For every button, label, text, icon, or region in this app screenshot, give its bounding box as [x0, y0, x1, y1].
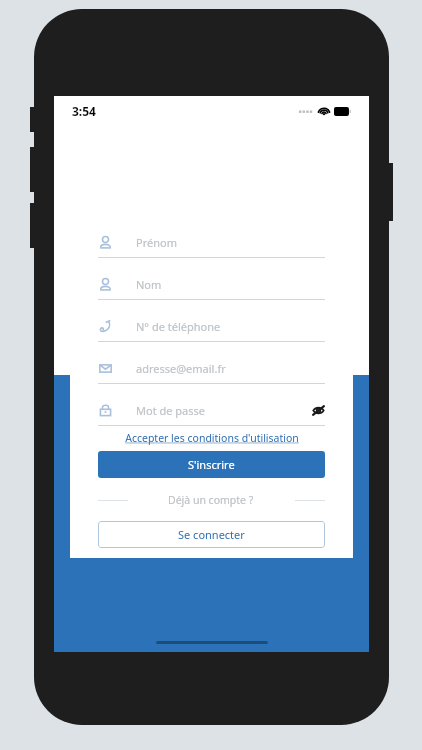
- staticText: 3:54: [72, 103, 96, 119]
- staticText: S'inscrire: [188, 457, 235, 472]
- staticText: Mot de passe: [136, 403, 205, 418]
- button[interactable]: adresse@email.fr: [98, 353, 325, 384]
- staticText: N° de téléphone: [136, 319, 221, 334]
- staticText: adresse@email.fr: [136, 361, 226, 376]
- staticText: Se connecter: [178, 527, 245, 542]
- button[interactable]: Mot de passe: [98, 395, 325, 426]
- staticText: Accepter les conditions d'utilisation: [125, 431, 299, 445]
- staticText: Nom: [136, 277, 162, 292]
- button[interactable]: Prénom: [98, 227, 325, 258]
- staticText: Déjà un compte ?: [168, 493, 254, 507]
- button[interactable]: Accepter les conditions d'utilisation: [98, 431, 325, 445]
- button[interactable]: Afficher le mot de passe: [312, 404, 325, 417]
- button[interactable]: Nom: [98, 269, 325, 300]
- button[interactable]: N° de téléphone: [98, 311, 325, 342]
- staticText: Prénom: [136, 235, 177, 250]
- button[interactable]: Se connecter: [98, 521, 325, 548]
- button[interactable]: S'inscrire: [98, 451, 325, 478]
